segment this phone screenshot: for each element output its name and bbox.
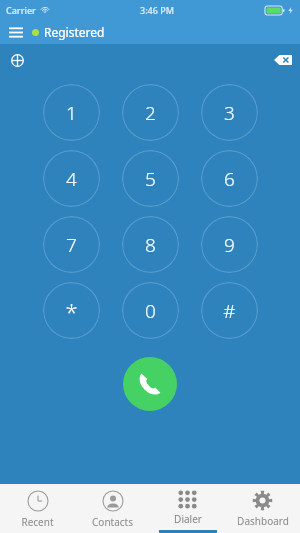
staticText: Recent <box>21 515 54 529</box>
staticText: 4 <box>66 166 77 192</box>
button[interactable]: * <box>43 282 100 339</box>
button[interactable]: Call <box>123 357 177 411</box>
button[interactable]: Add contact <box>0 44 34 76</box>
button[interactable]: 3 <box>201 84 258 141</box>
button[interactable]: 7 <box>43 216 100 273</box>
staticText: 6 <box>224 166 235 192</box>
button[interactable]: 4 <box>43 150 100 207</box>
staticText: 9 <box>224 232 235 258</box>
staticText: Contacts <box>92 515 133 529</box>
staticText: Dashboard <box>237 514 289 528</box>
staticText: 1 <box>66 100 77 126</box>
button[interactable]: Menu <box>0 20 32 44</box>
button[interactable]: 6 <box>201 150 258 207</box>
staticText: Carrier <box>6 4 36 16</box>
staticText: 3:46 PM <box>140 4 174 16</box>
button[interactable]: 5 <box>122 150 179 207</box>
button[interactable]: 8 <box>122 216 179 273</box>
staticText: Registered <box>44 24 105 40</box>
staticText: * <box>65 296 78 326</box>
button[interactable]: Contacts <box>75 484 150 533</box>
button[interactable]: # <box>201 282 258 339</box>
button[interactable]: 2 <box>122 84 179 141</box>
button[interactable]: Recent <box>0 484 75 533</box>
button[interactable]: 9 <box>201 216 258 273</box>
staticText: # <box>223 298 236 324</box>
button[interactable]: 0 <box>122 282 179 339</box>
button[interactable]: Dialer <box>150 484 225 533</box>
button[interactable]: 1 <box>43 84 100 141</box>
button[interactable]: Backspace <box>266 44 300 76</box>
staticText: Dialer <box>174 512 202 526</box>
staticText: 2 <box>145 100 156 126</box>
button[interactable]: Dashboard <box>225 484 300 533</box>
staticText: 5 <box>145 166 156 192</box>
staticText: 3 <box>224 100 235 126</box>
staticText: 0 <box>145 298 156 324</box>
staticText: 7 <box>66 232 77 258</box>
staticText: 8 <box>145 232 156 258</box>
